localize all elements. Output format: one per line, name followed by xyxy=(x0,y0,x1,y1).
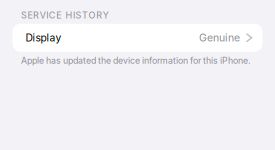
staticText: Apple has updated the device information… xyxy=(21,55,251,66)
staticText: Display xyxy=(25,31,61,44)
button[interactable]: Display xyxy=(12,24,262,52)
staticText: SERVICE HISTORY xyxy=(21,10,109,21)
staticText: Genuine xyxy=(199,31,240,44)
